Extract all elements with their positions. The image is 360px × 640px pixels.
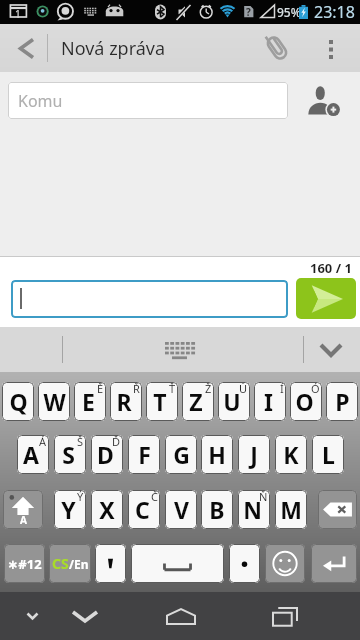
button[interactable]: T: [146, 382, 178, 421]
staticText: Nová zpráva: [61, 36, 166, 61]
button[interactable]: Home: [158, 592, 204, 640]
staticText: P: [335, 386, 350, 417]
button[interactable]: Z: [182, 382, 214, 421]
staticText: F: [138, 439, 151, 470]
staticText: ∗#12: [7, 555, 42, 573]
staticText: J: [250, 439, 258, 470]
button[interactable]: Add contact: [296, 80, 348, 120]
staticText: CS: [52, 554, 69, 573]
staticText: A: [23, 439, 39, 470]
staticText: D: [97, 439, 114, 470]
staticText: Í: [280, 382, 284, 396]
button[interactable]: Komu: [8, 82, 288, 119]
button[interactable]: K: [275, 435, 307, 474]
staticText: Ž: [205, 382, 212, 396]
staticText: Ť: [169, 382, 176, 396]
staticText: I: [264, 386, 273, 417]
button[interactable]: Hide keyboard: [63, 592, 107, 640]
button[interactable]: P: [326, 382, 358, 421]
button[interactable]: Back: [4, 24, 48, 72]
button[interactable]: O: [290, 382, 322, 421]
staticText: H: [208, 439, 226, 470]
button[interactable]: U: [218, 382, 250, 421]
staticText: 23:18: [314, 1, 355, 23]
staticText: G: [173, 439, 190, 470]
staticText: Ů: [239, 382, 248, 396]
button[interactable]: Q: [2, 382, 34, 421]
staticText: X: [99, 494, 115, 525]
button[interactable]: Keyboard layout: [162, 333, 198, 366]
staticText: 95%: [277, 4, 301, 20]
button[interactable]: emoji: [265, 544, 305, 583]
staticText: Q: [9, 386, 28, 417]
staticText: E: [82, 386, 95, 417]
button[interactable]: E: [74, 382, 106, 421]
staticText: C: [135, 494, 150, 525]
button[interactable]: More options: [310, 24, 352, 72]
button[interactable]: Send: [296, 278, 356, 319]
staticText: L: [322, 439, 335, 470]
button[interactable]: [11, 280, 288, 318]
button[interactable]: S: [54, 435, 86, 474]
button[interactable]: H: [201, 435, 233, 474]
staticText: 1: [15, 7, 21, 21]
staticText: Á: [39, 435, 47, 449]
button[interactable]: Hide keyboard: [314, 333, 348, 366]
button[interactable]: comma: [95, 544, 126, 583]
staticText: Ó: [311, 382, 320, 396]
button[interactable]: D: [91, 435, 123, 474]
button[interactable]: enter: [311, 544, 357, 583]
staticText: Z: [189, 386, 203, 417]
button[interactable]: Recents: [262, 592, 308, 640]
button[interactable]: space: [131, 544, 224, 583]
staticText: Č: [151, 490, 158, 504]
staticText: Y: [61, 494, 76, 525]
button[interactable]: X: [91, 490, 123, 529]
button[interactable]: C: [128, 490, 160, 529]
button[interactable]: Back: [12, 592, 52, 640]
staticText: S: [62, 439, 75, 470]
button[interactable]: J: [238, 435, 270, 474]
staticText: V: [174, 494, 189, 525]
button[interactable]: L: [312, 435, 344, 474]
staticText: Ň: [259, 490, 268, 504]
staticText: K: [283, 439, 299, 470]
button[interactable]: F: [128, 435, 160, 474]
button[interactable]: N: [238, 490, 270, 529]
staticText: Ý: [77, 490, 84, 504]
button[interactable]: ∗#12: [4, 544, 45, 583]
staticText: O: [295, 386, 314, 417]
button[interactable]: I: [254, 382, 286, 421]
button[interactable]: B: [201, 490, 233, 529]
button[interactable]: Attach: [254, 24, 300, 72]
staticText: N: [243, 494, 262, 525]
button[interactable]: del: [318, 490, 357, 529]
staticText: R: [116, 386, 132, 417]
button[interactable]: Y: [54, 490, 86, 529]
staticText: T: [153, 386, 167, 417]
staticText: Ř: [133, 382, 140, 396]
button[interactable]: W: [38, 382, 70, 421]
staticText: Ď: [112, 435, 121, 449]
button[interactable]: A: [17, 435, 49, 474]
staticText: 160 / 1: [310, 259, 352, 277]
staticText: Ě: [97, 382, 104, 396]
staticText: W: [43, 386, 66, 417]
staticText: U: [223, 386, 241, 417]
button[interactable]: G: [165, 435, 197, 474]
button[interactable]: period: [229, 544, 260, 583]
staticText: M: [280, 494, 302, 525]
staticText: A: [20, 513, 27, 527]
staticText: ?: [246, 5, 251, 19]
staticText: B: [209, 494, 225, 525]
button[interactable]: M: [275, 490, 307, 529]
button[interactable]: V: [165, 490, 197, 529]
staticText: /En: [69, 556, 89, 572]
button[interactable]: shift: [3, 490, 43, 529]
staticText: Š: [77, 435, 84, 449]
button[interactable]: lang: [49, 544, 91, 583]
button[interactable]: R: [110, 382, 142, 421]
staticText: Komu: [18, 90, 63, 112]
